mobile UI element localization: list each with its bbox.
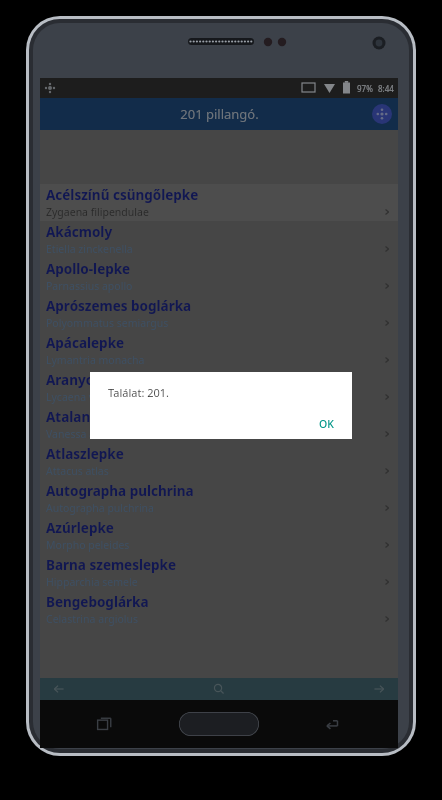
staticText: Akácmoly (46, 223, 113, 241)
staticText: 97% (357, 83, 373, 94)
staticText: Aranyos rezeslepke (46, 371, 177, 389)
staticText: Apollo-lepke (46, 260, 131, 278)
button[interactable]: Forward (370, 680, 388, 698)
button[interactable]: Akácmoly (40, 221, 398, 258)
button[interactable]: Aprószemes boglárka (40, 295, 398, 332)
staticText: Autographa pulchrina (46, 501, 382, 515)
staticText: Polyommatus semiargus (46, 316, 382, 330)
staticText: Acélszínű csüngőlepke (46, 186, 199, 204)
staticText: Attacus atlas (46, 464, 382, 478)
button[interactable]: Home (179, 712, 259, 736)
button[interactable]: Apollo-lepke (40, 258, 398, 295)
button[interactable]: Barna szemeslepke (40, 554, 398, 591)
button[interactable]: Aranyos rezeslepke (40, 369, 398, 406)
button[interactable]: Acélszínű csüngőlepke (40, 184, 398, 221)
staticText: Autographa pulchrina (46, 482, 194, 500)
staticText: Hipparchia semele (46, 575, 382, 589)
staticText: Vanessa atalanta (46, 427, 382, 441)
staticText: OK (319, 417, 334, 431)
button[interactable]: Atalantalepke (40, 406, 398, 443)
button[interactable]: Search (210, 680, 228, 698)
staticText: Zygaena filipendulae (46, 205, 382, 219)
button[interactable]: Apácalepke (40, 332, 398, 369)
staticText: Azúrlepke (46, 519, 114, 537)
staticText: Aprószemes boglárka (46, 297, 192, 315)
staticText: Találat: 201. (108, 385, 170, 400)
staticText: Apácalepke (46, 334, 125, 352)
staticText: Lymantria monacha (46, 353, 382, 367)
staticText: Morpho peleides (46, 538, 382, 552)
staticText: Barna szemeslepke (46, 556, 177, 574)
button[interactable]: Azúrlepke (40, 517, 398, 554)
button[interactable]: Back (50, 680, 68, 698)
staticText: Etiella zinckenella (46, 242, 382, 256)
staticText: Bengeboglárka (46, 593, 149, 611)
button[interactable]: Bengeboglárka (40, 591, 398, 628)
button[interactable]: Back (320, 711, 346, 737)
staticText: 201 pillangó. (180, 105, 259, 123)
staticText: Atalantalepke (46, 408, 142, 426)
button[interactable]: Recents (92, 711, 118, 737)
staticText: Celastrina argiolus (46, 612, 382, 626)
button[interactable]: Autographa pulchrina (40, 480, 398, 517)
staticText: Atlaszlepke (46, 445, 124, 463)
button[interactable]: Add (372, 104, 392, 124)
button[interactable]: Atlaszlepke (40, 443, 398, 480)
staticText: 8:44 (378, 83, 394, 94)
staticText: Lycaena virgaureae (46, 390, 382, 404)
button[interactable]: OK (309, 413, 344, 435)
staticText: Parnassius apollo (46, 279, 382, 293)
